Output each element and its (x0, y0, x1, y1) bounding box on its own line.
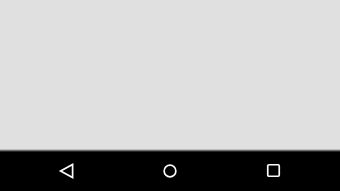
button[interactable]: Recent apps (225, 150, 321, 191)
button[interactable]: Home (122, 150, 218, 191)
button[interactable]: Back (19, 150, 115, 191)
